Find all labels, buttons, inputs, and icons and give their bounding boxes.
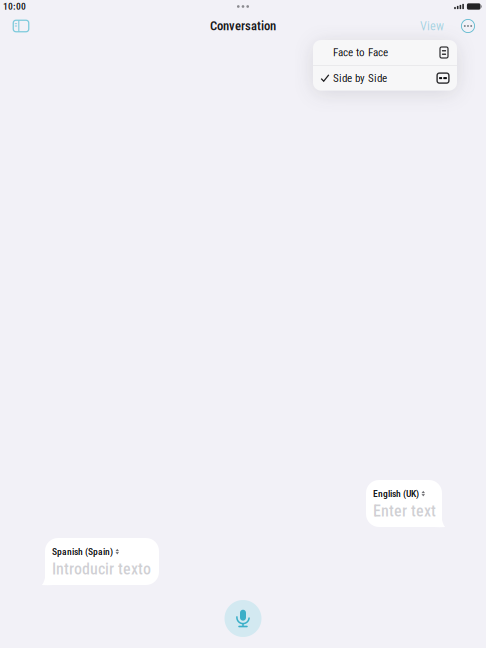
staticText: English (UK) [373,488,419,499]
staticText: Enter text [373,502,436,521]
staticText: 10:00 [3,1,26,12]
button[interactable]: View [420,14,444,38]
staticText: Side by Side [333,72,387,85]
button[interactable]: Record [224,600,261,637]
button[interactable]: Side by Side [313,66,457,91]
staticText: View [420,19,444,33]
button[interactable]: More options [456,14,480,38]
staticText: Conversation [210,19,276,33]
staticText: Face to Face [333,46,388,59]
button[interactable]: Show Sidebar [9,14,33,38]
staticText: Spanish (Spain) [52,546,113,557]
button[interactable]: Face to Face [313,40,457,65]
staticText: Introducir texto [52,560,151,579]
